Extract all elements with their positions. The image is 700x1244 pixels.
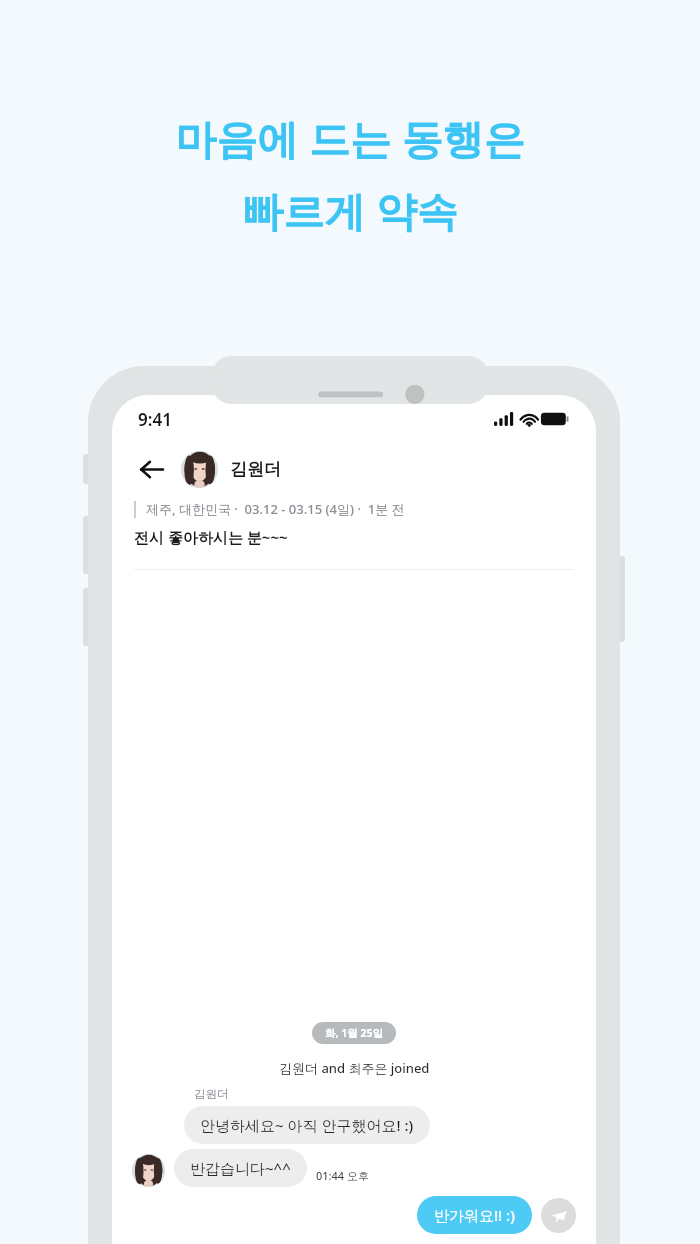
- staticText: 9:41: [138, 408, 172, 431]
- staticText: 안녕하세요~ 아직 안구했어요! :): [200, 1115, 414, 1135]
- staticText: 제주, 대한민국 · 03.12 - 03.15 (4일) · 1분 전: [146, 500, 405, 518]
- button[interactable]: Back: [134, 452, 168, 486]
- button[interactable]: 김원더: [181, 451, 281, 488]
- staticText: 01:44 오후: [316, 1168, 370, 1183]
- button[interactable]: 반가워요!! :): [417, 1196, 532, 1234]
- button[interactable]: 화, 1월 25일: [312, 1022, 396, 1044]
- staticText: 김원더 and 최주은 joined: [279, 1059, 430, 1077]
- staticText: 화, 1월 25일: [325, 1026, 383, 1040]
- staticText: 김원더: [230, 459, 281, 480]
- button[interactable]: Send: [541, 1198, 576, 1233]
- staticText: 마음에 드는 동행은: [175, 110, 525, 166]
- staticText: 반갑습니다~^^: [190, 1158, 291, 1178]
- staticText: 반가워요!! :): [434, 1205, 515, 1225]
- button[interactable]: 안녕하세요~ 아직 안구했어요! :): [184, 1106, 430, 1144]
- staticText: 빠르게 약속: [242, 182, 458, 238]
- staticText: 전시 좋아하시는 분~~~: [134, 527, 288, 547]
- button[interactable]: 반갑습니다~^^: [174, 1149, 307, 1187]
- staticText: 김원더: [194, 1087, 229, 1101]
